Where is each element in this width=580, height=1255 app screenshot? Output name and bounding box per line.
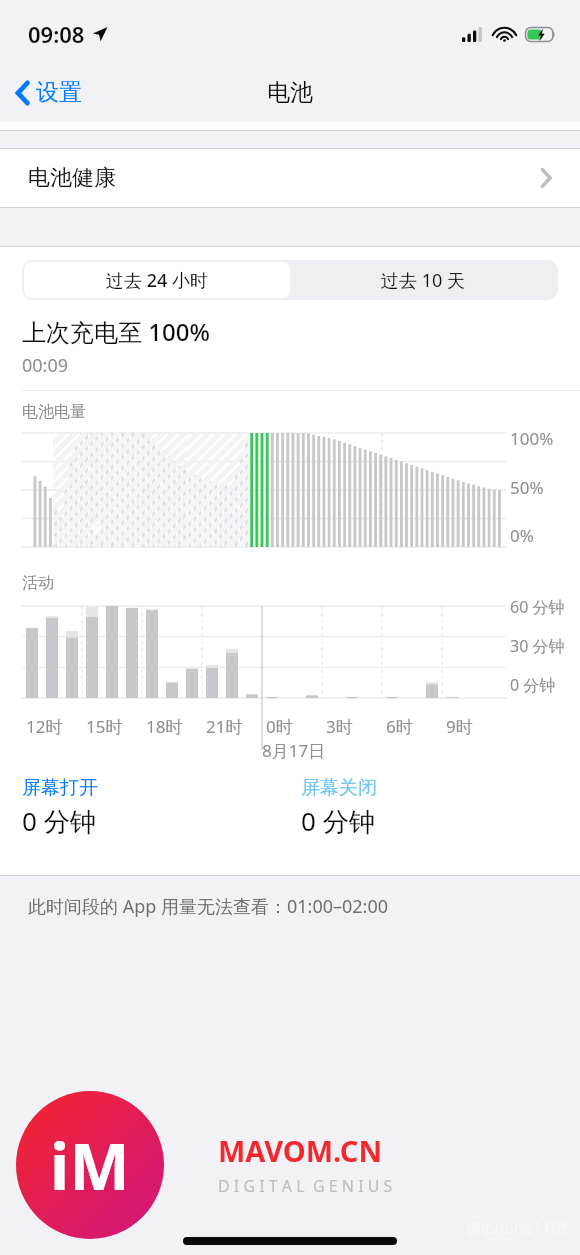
other: 打开电池健康 — [540, 168, 552, 188]
staticText: 09:08 — [28, 19, 85, 49]
staticText: 30 分钟 — [510, 635, 565, 657]
staticText: 6时 — [386, 715, 413, 738]
staticText: 过去 10 天 — [381, 268, 465, 293]
staticText: 15时 — [86, 715, 123, 738]
staticText: 0 分钟 — [510, 674, 556, 696]
staticText: 9时 — [446, 715, 473, 738]
button[interactable]: 设置 — [0, 70, 94, 115]
staticText: 0 分钟 — [301, 803, 375, 839]
staticText: 21时 — [206, 715, 243, 738]
staticText: MAVOM.CN — [218, 1131, 382, 1170]
button[interactable]: 电池健康 — [0, 149, 580, 207]
staticText: 00:09 — [22, 353, 69, 378]
button[interactable]: 过去 24 小时 — [24, 262, 290, 298]
staticText: 此时间段的 App 用量无法查看：01:00–02:00 — [28, 894, 389, 919]
button[interactable]: 过去 10 天 — [290, 262, 556, 298]
staticText: 3时 — [326, 715, 353, 738]
staticText: 屏幕关闭 — [301, 776, 377, 800]
staticText: 设置 — [36, 78, 82, 107]
staticText: 电池电量 — [22, 402, 86, 422]
staticText: 50% — [510, 476, 544, 499]
staticText: 0% — [510, 524, 534, 547]
staticText: 上次充电至 100% — [22, 315, 210, 348]
staticText: 电池 — [267, 78, 313, 107]
staticText: D I G I T A L G E N I U S — [218, 1175, 393, 1197]
staticText: 8月17日 — [262, 739, 326, 762]
staticText: 12时 — [26, 715, 63, 738]
staticText: 活动 — [22, 573, 54, 593]
staticText: 过去 24 小时 — [106, 268, 208, 293]
staticText: 18时 — [146, 715, 183, 738]
staticText: 60 分钟 — [510, 596, 565, 618]
staticText: 电池健康 — [28, 164, 116, 192]
staticText: iM — [50, 1122, 130, 1209]
staticText: 100% — [510, 427, 554, 450]
staticText: 0 分钟 — [22, 803, 96, 839]
staticText: 屏幕打开 — [22, 776, 98, 800]
staticText: 0时 — [266, 715, 293, 738]
